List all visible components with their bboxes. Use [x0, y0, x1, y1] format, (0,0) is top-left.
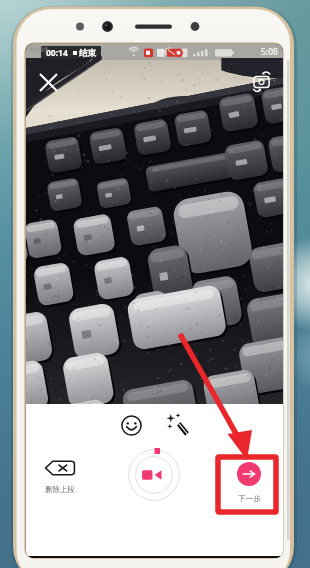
button[interactable]: Switch camera	[245, 65, 277, 97]
staticText: 00:14	[46, 47, 68, 59]
button[interactable]: 00:14	[46, 46, 96, 59]
staticText: 下一步	[238, 494, 261, 503]
button[interactable]: Stickers	[114, 408, 148, 442]
button[interactable]: Record	[128, 449, 180, 501]
button[interactable]: Close	[32, 66, 64, 98]
button[interactable]: Beauty effects	[161, 408, 195, 442]
staticText: 5:08	[261, 46, 278, 58]
staticText: 结束	[79, 48, 96, 59]
staticText: 后台服务	[29, 46, 49, 52]
button[interactable]: 下一步	[229, 462, 269, 503]
button[interactable]: 删除上段	[40, 460, 80, 494]
staticText: 删除上段	[45, 485, 75, 494]
